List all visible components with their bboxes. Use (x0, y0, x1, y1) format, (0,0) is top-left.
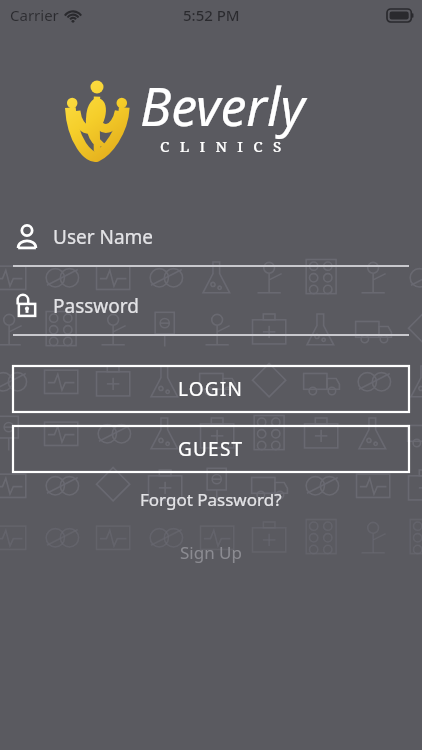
staticText: LOGIN (178, 376, 244, 402)
button[interactable]: Password (0, 289, 422, 336)
button[interactable]: Sign Up (0, 537, 422, 568)
other: Password (15, 293, 39, 319)
staticText: GUEST (178, 436, 244, 462)
staticText: Carrier (10, 5, 59, 25)
staticText: User Name (53, 224, 154, 250)
button[interactable]: GUEST (13, 426, 409, 472)
staticText: Sign Up (180, 541, 242, 564)
button[interactable]: User name (0, 220, 422, 267)
button[interactable]: Forgot Password? (0, 484, 422, 515)
staticText: C L I N I C S (160, 136, 285, 156)
button[interactable]: LOGIN (13, 366, 409, 412)
staticText: Beverly (140, 70, 305, 141)
other: User name (15, 224, 39, 250)
staticText: Forgot Password? (140, 488, 282, 511)
staticText: Password (53, 293, 139, 319)
staticText: 5:52 PM (183, 5, 240, 25)
